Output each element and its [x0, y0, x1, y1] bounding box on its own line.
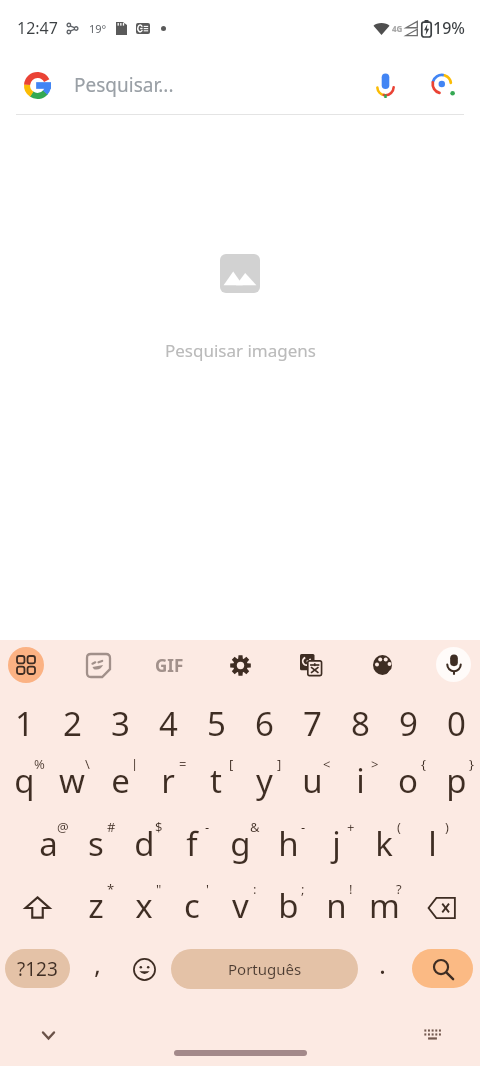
button[interactable]: Pesquisa por voz — [362, 62, 408, 108]
staticText: } — [469, 755, 474, 771]
button[interactable]: p — [432, 751, 480, 809]
button[interactable]: Teclado — [416, 1018, 448, 1050]
staticText: 4 — [159, 701, 178, 746]
button[interactable]: c — [168, 876, 216, 934]
button[interactable]: a — [24, 814, 72, 872]
button[interactable]: Figurinhas — [77, 644, 119, 686]
staticText: [ — [229, 755, 234, 771]
button[interactable]: n — [312, 876, 360, 934]
staticText: d — [134, 821, 155, 866]
staticText: ] — [277, 755, 282, 771]
staticText: > — [371, 755, 379, 771]
staticText: + — [347, 818, 355, 834]
button[interactable]: 8 — [336, 694, 384, 752]
staticText: : — [253, 880, 257, 896]
button[interactable]: u — [288, 751, 336, 809]
button[interactable]: 2 — [48, 694, 96, 752]
staticText: l — [428, 821, 437, 866]
button[interactable]: Emoji — [121, 944, 167, 994]
button[interactable]: Mais opções — [8, 647, 44, 683]
button[interactable]: Digitação por voz — [436, 647, 471, 682]
staticText: " — [156, 880, 162, 896]
button[interactable]: l — [408, 814, 456, 872]
button[interactable]: Apagar — [404, 878, 480, 938]
staticText: $ — [155, 818, 163, 834]
button[interactable]: Google Lens — [420, 62, 466, 108]
staticText: * — [107, 880, 115, 896]
button[interactable]: Google — [20, 68, 54, 102]
button[interactable]: Shift — [0, 877, 75, 937]
button[interactable]: w — [48, 751, 96, 809]
button[interactable]: 9 — [384, 694, 432, 752]
staticText: ! — [349, 880, 353, 896]
button[interactable]: Pesquisar — [412, 949, 473, 988]
staticText: 0 — [447, 701, 466, 746]
button[interactable]: t — [192, 751, 240, 809]
button[interactable]: GIF — [148, 644, 190, 686]
button[interactable]: g — [216, 814, 264, 872]
staticText: - — [301, 818, 306, 834]
staticText: ?123 — [17, 956, 58, 982]
button[interactable]: 7 — [288, 694, 336, 752]
button[interactable]: o — [384, 751, 432, 809]
button[interactable]: Traduzir — [290, 644, 332, 686]
button[interactable]: d — [120, 814, 168, 872]
button[interactable]: y — [240, 751, 288, 809]
button[interactable]: v — [216, 876, 264, 934]
staticText: g — [230, 821, 251, 866]
button[interactable]: ?123 — [5, 949, 70, 988]
button[interactable]: Português — [171, 949, 358, 989]
staticText: Pesquisar imagens — [165, 339, 316, 362]
button[interactable]: s — [72, 814, 120, 872]
button[interactable]: b — [264, 876, 312, 934]
staticText: 19° — [89, 21, 107, 36]
button[interactable]: e — [96, 751, 144, 809]
button[interactable]: . — [359, 944, 405, 994]
staticText: q — [14, 758, 35, 803]
staticText: Português — [228, 959, 302, 979]
button[interactable]: 0 — [432, 694, 480, 752]
staticText: & — [250, 818, 260, 834]
staticText: ) — [445, 818, 449, 834]
button[interactable]: 4 — [144, 694, 192, 752]
button[interactable]: 6 — [240, 694, 288, 752]
staticText: 12:47 — [17, 17, 58, 39]
staticText: % — [34, 755, 45, 771]
button[interactable]: h — [264, 814, 312, 872]
staticText: r — [161, 758, 175, 803]
staticText: \ — [85, 755, 90, 771]
button[interactable]: 3 — [96, 694, 144, 752]
staticText: o — [398, 758, 418, 803]
staticText: - — [205, 818, 210, 834]
button[interactable]: 5 — [192, 694, 240, 752]
staticText: | — [131, 755, 139, 771]
button[interactable]: Temas — [361, 644, 403, 686]
staticText: n — [326, 883, 347, 928]
button[interactable]: x — [120, 876, 168, 934]
button[interactable]: , — [74, 944, 120, 994]
button[interactable]: z — [72, 876, 120, 934]
button[interactable]: Configurações — [219, 644, 261, 686]
staticText: 19% — [433, 17, 465, 39]
button[interactable]: q — [0, 751, 48, 809]
staticText: < — [323, 755, 331, 771]
button[interactable]: j — [312, 814, 360, 872]
staticText: f — [186, 821, 198, 866]
staticText: 7 — [303, 701, 322, 746]
button[interactable]: r — [144, 751, 192, 809]
button[interactable]: k — [360, 814, 408, 872]
staticText: h — [278, 821, 299, 866]
staticText: z — [88, 883, 104, 928]
button[interactable]: Fechar teclado — [32, 1019, 64, 1051]
button[interactable]: i — [336, 751, 384, 809]
staticText: p — [446, 758, 467, 803]
button[interactable]: 1 — [0, 694, 48, 752]
button[interactable]: f — [168, 814, 216, 872]
staticText: e — [111, 758, 130, 803]
staticText: a — [39, 821, 58, 866]
staticText: i — [356, 758, 365, 803]
staticText: @ — [57, 818, 69, 834]
button[interactable]: m — [360, 876, 408, 934]
staticText: x — [135, 883, 153, 928]
staticText: # — [107, 818, 116, 834]
